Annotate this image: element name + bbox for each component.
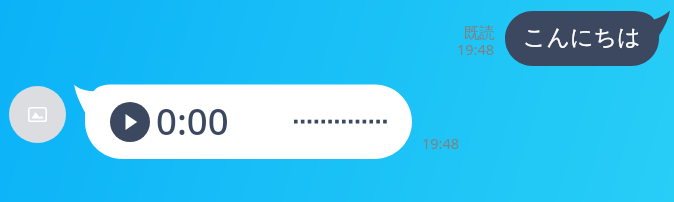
staticText: 19:48: [457, 39, 495, 59]
staticText: こんにちは: [523, 23, 641, 52]
button[interactable]: こんにちは: [505, 11, 659, 66]
staticText: 19:48: [422, 133, 460, 153]
button[interactable]: Play: [110, 102, 150, 142]
staticText: 0:00: [156, 96, 229, 146]
button[interactable]: Play: [85, 84, 412, 159]
staticText: 既読: [464, 23, 495, 43]
button[interactable]: Profile picture: [9, 86, 66, 143]
